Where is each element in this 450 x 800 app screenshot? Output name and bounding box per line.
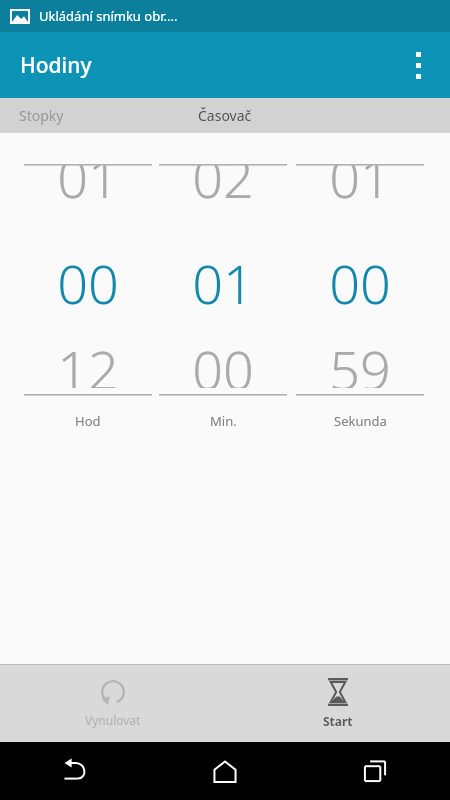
button[interactable]: Start bbox=[225, 664, 450, 742]
button[interactable]: 12 bbox=[28, 338, 148, 394]
staticText: 01 bbox=[163, 246, 283, 312]
button[interactable]: Back bbox=[0, 742, 150, 800]
button[interactable]: Časovač bbox=[160, 98, 290, 133]
staticText: Sekunda bbox=[334, 412, 387, 430]
staticText: 59 bbox=[300, 338, 420, 388]
staticText: Min. bbox=[210, 412, 237, 430]
button[interactable]: 01 bbox=[28, 165, 148, 225]
button[interactable]: 00 bbox=[28, 246, 148, 312]
button[interactable]: Home bbox=[150, 742, 300, 800]
button[interactable]: 00 bbox=[163, 338, 283, 394]
staticText: 01 bbox=[28, 165, 148, 200]
button[interactable]: 00 bbox=[300, 246, 420, 312]
button[interactable]: More options bbox=[396, 43, 440, 87]
staticText: Stopky bbox=[19, 106, 64, 125]
button[interactable]: Stopky bbox=[0, 98, 106, 133]
button[interactable]: 02 bbox=[163, 165, 283, 225]
staticText: 00 bbox=[300, 246, 420, 312]
staticText: 00 bbox=[28, 246, 148, 312]
staticText: 12 bbox=[28, 338, 148, 388]
button[interactable]: 01 bbox=[300, 165, 420, 225]
staticText: Časovač bbox=[198, 106, 252, 125]
staticText: 02 bbox=[163, 165, 283, 200]
staticText: Hodiny bbox=[20, 51, 92, 80]
staticText: Ukládání snímku obr.... bbox=[39, 7, 178, 25]
button[interactable]: Vynulovat bbox=[0, 664, 225, 742]
button[interactable]: 59 bbox=[300, 338, 420, 394]
staticText: Vynulovat bbox=[85, 712, 141, 728]
button[interactable]: Recent apps bbox=[300, 742, 450, 800]
staticText: Start bbox=[323, 713, 353, 729]
staticText: 01 bbox=[300, 165, 420, 200]
staticText: 00 bbox=[163, 338, 283, 388]
button[interactable]: 01 bbox=[163, 246, 283, 312]
staticText: Hod bbox=[75, 412, 101, 430]
